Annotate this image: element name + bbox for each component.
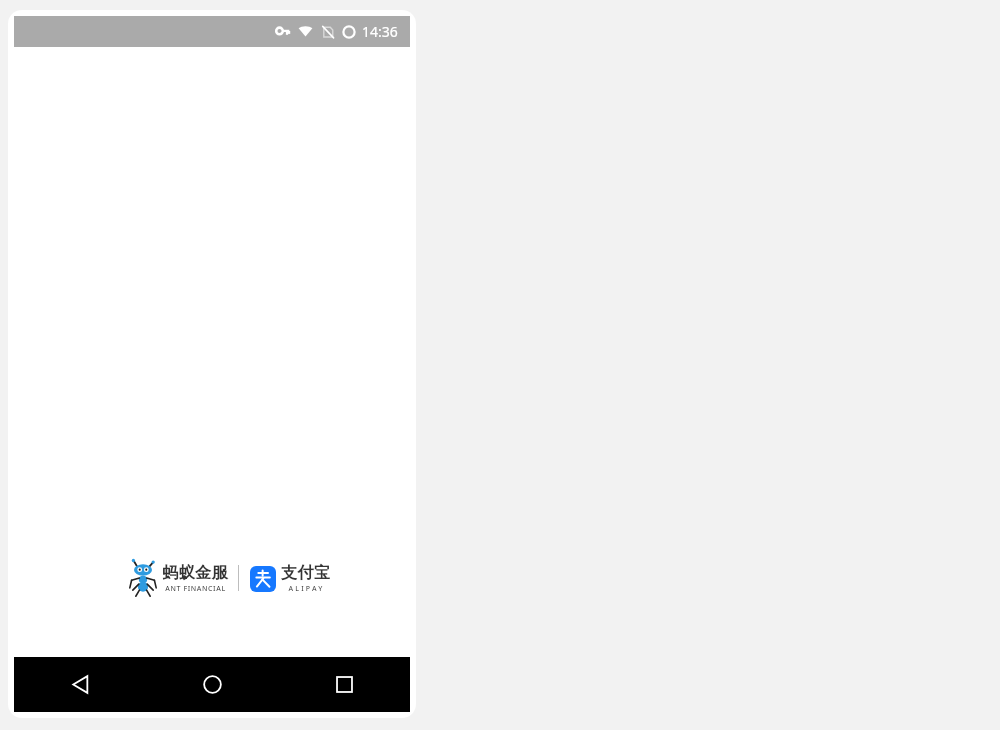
button[interactable]: Home bbox=[146, 657, 278, 712]
button[interactable]: Alipay icon bbox=[250, 563, 331, 594]
other: Ant Financial mascot bbox=[128, 559, 158, 597]
button[interactable]: Recent apps bbox=[278, 657, 410, 712]
staticText: ANT FINANCIAL bbox=[165, 584, 226, 594]
staticText: ALIPAY bbox=[288, 584, 325, 594]
button[interactable]: Back bbox=[14, 657, 146, 712]
other: Alipay icon bbox=[250, 566, 276, 592]
button[interactable]: Ant Financial mascot bbox=[128, 559, 228, 597]
staticText: 支付宝 bbox=[281, 563, 331, 583]
staticText: 14:36 bbox=[362, 22, 398, 41]
staticText: 蚂蚁金服 bbox=[162, 563, 228, 583]
